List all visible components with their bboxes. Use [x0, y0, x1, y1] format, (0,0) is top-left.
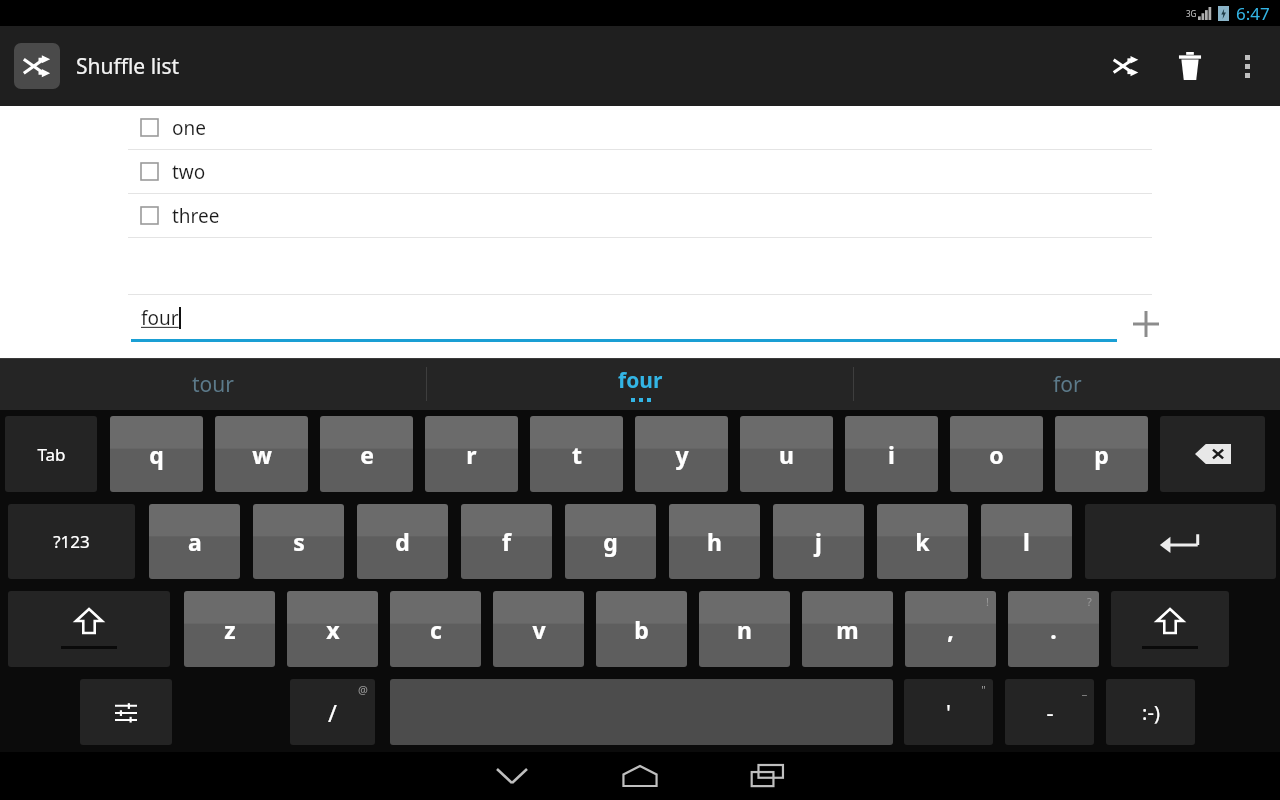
button[interactable]: :-) — [1106, 679, 1195, 745]
button[interactable]: z — [184, 591, 275, 667]
button[interactable]: x — [287, 591, 378, 667]
button[interactable]: , — [905, 591, 996, 667]
staticText: ' — [946, 697, 951, 727]
button[interactable]: n — [699, 591, 790, 667]
button[interactable]: s — [253, 504, 344, 579]
button[interactable]: w — [215, 416, 308, 492]
button[interactable]: Home — [580, 752, 700, 800]
staticText: for — [1053, 370, 1082, 399]
staticText: r — [466, 439, 477, 470]
button[interactable]: two — [0, 150, 1280, 193]
button[interactable]: t — [530, 416, 623, 492]
staticText: four — [618, 366, 663, 395]
button[interactable]: for — [854, 358, 1280, 410]
staticText: h — [707, 526, 722, 557]
button[interactable]: u — [740, 416, 833, 492]
staticText: " — [981, 682, 986, 697]
button[interactable]: Hide keyboard — [452, 752, 572, 800]
button[interactable]: a — [149, 504, 240, 579]
staticText: . — [1050, 614, 1057, 645]
button[interactable]: y — [635, 416, 728, 492]
button[interactable]: j — [773, 504, 864, 579]
staticText: c — [430, 614, 442, 645]
button[interactable]: Backspace — [1160, 416, 1265, 492]
button[interactable]: p — [1055, 416, 1148, 492]
button[interactable]: Shift — [1111, 591, 1229, 667]
button[interactable]: Symbols — [8, 504, 135, 579]
staticText: @ — [358, 682, 368, 697]
button[interactable]: More options — [1222, 26, 1272, 106]
staticText: x — [326, 614, 340, 645]
button[interactable]: ' — [904, 679, 993, 745]
staticText: one — [172, 115, 206, 141]
button[interactable]: tour — [0, 358, 426, 410]
button[interactable]: three — [0, 194, 1280, 237]
staticText: :-) — [1142, 699, 1160, 726]
button[interactable]: i — [845, 416, 938, 492]
button[interactable]: k — [877, 504, 968, 579]
button[interactable]: c — [390, 591, 481, 667]
staticText: e — [360, 439, 374, 470]
button[interactable]: v — [493, 591, 584, 667]
staticText: 6:47 — [1236, 2, 1270, 25]
staticText: four — [141, 305, 179, 331]
staticText: t — [572, 439, 582, 470]
button[interactable]: Recent apps — [708, 752, 828, 800]
button[interactable]: - — [1005, 679, 1094, 745]
button[interactable]: e — [320, 416, 413, 492]
staticText: ! — [986, 594, 989, 609]
staticText: 3G — [1186, 8, 1197, 19]
staticText: b — [634, 614, 649, 645]
button[interactable]: b — [596, 591, 687, 667]
staticText: two — [172, 159, 206, 185]
button[interactable]: m — [802, 591, 893, 667]
button[interactable]: four — [131, 305, 1117, 342]
button[interactable]: Add item — [1122, 300, 1170, 348]
staticText: / — [328, 696, 337, 729]
button[interactable]: App icon — [14, 43, 60, 89]
staticText: ? — [1087, 594, 1092, 609]
button[interactable]: o — [950, 416, 1043, 492]
button[interactable]: Shuffle — [1094, 26, 1158, 106]
staticText: tour — [192, 370, 234, 399]
staticText: y — [675, 439, 689, 470]
staticText: a — [188, 526, 202, 557]
staticText: u — [779, 439, 794, 470]
button[interactable]: Delete — [1158, 26, 1222, 106]
staticText: i — [888, 439, 895, 470]
staticText: k — [915, 526, 930, 557]
button[interactable]: f — [461, 504, 552, 579]
staticText: Tab — [37, 443, 66, 466]
button[interactable]: r — [425, 416, 518, 492]
staticText: v — [532, 614, 546, 645]
button[interactable]: l — [981, 504, 1072, 579]
staticText: p — [1094, 439, 1109, 470]
button[interactable]: d — [357, 504, 448, 579]
staticText: s — [293, 526, 305, 557]
button[interactable]: h — [669, 504, 760, 579]
button[interactable]: g — [565, 504, 656, 579]
button[interactable]: Tab — [5, 416, 97, 492]
staticText: _ — [1082, 682, 1087, 697]
staticText: d — [395, 526, 410, 557]
button[interactable]: one — [0, 106, 1280, 149]
button[interactable]: Shift — [8, 591, 170, 667]
button[interactable]: four — [427, 358, 853, 410]
staticText: - — [1046, 697, 1054, 727]
button[interactable]: q — [110, 416, 203, 492]
button[interactable]: Keyboard settings — [80, 679, 172, 745]
staticText: j — [815, 526, 822, 557]
button[interactable]: / — [290, 679, 375, 745]
button[interactable]: Enter — [1085, 504, 1276, 579]
staticText: , — [947, 614, 954, 645]
staticText: ?123 — [53, 530, 90, 553]
staticText: z — [224, 614, 236, 645]
staticText: three — [172, 203, 220, 229]
staticText: m — [836, 614, 859, 645]
staticText: n — [737, 614, 752, 645]
button[interactable]: . — [1008, 591, 1099, 667]
staticText: o — [989, 439, 1004, 470]
staticText: q — [149, 439, 164, 470]
staticText: g — [603, 526, 618, 557]
